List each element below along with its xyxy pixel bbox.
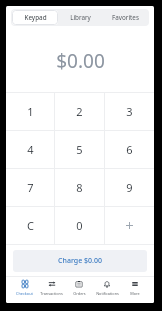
staticText: Orders <box>73 291 86 296</box>
staticText: 3 <box>126 104 133 119</box>
button[interactable]: C <box>6 207 54 244</box>
button[interactable]: 6 <box>105 131 154 168</box>
button[interactable]: 1 <box>6 93 54 130</box>
button[interactable]: 9 <box>105 169 154 206</box>
staticText: 9 <box>126 180 133 195</box>
staticText: 1 <box>27 104 34 119</box>
staticText: 0 <box>76 218 83 233</box>
button[interactable]: 4 <box>6 131 54 168</box>
staticText: $0.00 <box>56 48 105 74</box>
staticText: Library <box>70 13 91 22</box>
staticText: C <box>27 218 34 233</box>
staticText: 5 <box>76 142 83 157</box>
button[interactable]: Notifications <box>93 277 121 303</box>
button[interactable]: Charge $0.00 <box>13 250 147 272</box>
button[interactable]: Orders <box>65 277 93 303</box>
staticText: 4 <box>27 142 34 157</box>
button[interactable] <box>105 207 154 244</box>
staticText: Checkout <box>16 291 33 296</box>
staticText: Favorites <box>112 13 139 22</box>
button[interactable]: Checkout <box>11 277 38 303</box>
staticText: Charge $0.00 <box>58 256 102 266</box>
button[interactable]: 3 <box>105 93 154 130</box>
button[interactable]: 8 <box>55 169 104 206</box>
staticText: 6 <box>126 142 133 157</box>
button[interactable]: 7 <box>6 169 54 206</box>
staticText: Transactions <box>40 291 63 296</box>
staticText: More <box>130 291 140 296</box>
button[interactable]: Library <box>58 10 103 25</box>
button[interactable]: More <box>121 277 149 303</box>
staticText: 8 <box>76 180 83 195</box>
staticText: Keypad <box>24 13 47 22</box>
button[interactable]: Keypad <box>12 10 58 25</box>
button[interactable]: Favorites <box>103 10 148 25</box>
button[interactable]: 5 <box>55 131 104 168</box>
button[interactable]: Transactions <box>38 277 65 303</box>
button[interactable]: 2 <box>55 93 104 130</box>
staticText: 2 <box>76 104 83 119</box>
staticText: Notifications <box>96 291 119 296</box>
button[interactable]: 0 <box>55 207 104 244</box>
staticText: 7 <box>27 180 34 195</box>
